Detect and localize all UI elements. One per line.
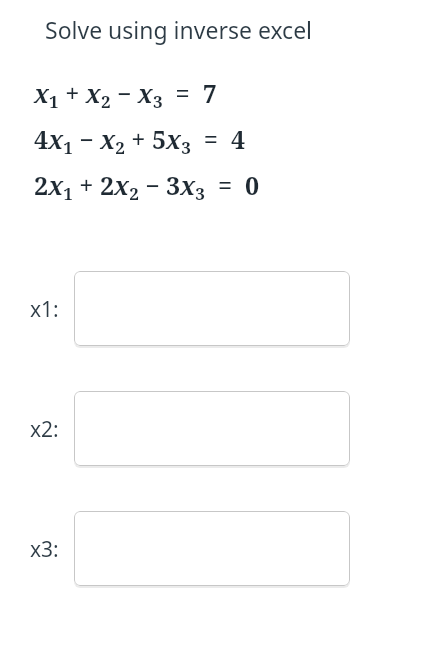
staticText: 4x1 − x2 + 5x3 = 4 [34,122,246,159]
staticText: x1 + x2 − x3 = 7 [34,76,217,113]
button[interactable]: Answer field for x3: [74,511,350,587]
staticText: x1: [30,295,59,324]
staticText: x3: [30,535,59,564]
staticText: 2x1 + 2x2 − 3x3 = 0 [34,168,260,205]
button[interactable]: Answer field for x1: [74,271,350,347]
staticText: Solve using inverse excel [45,14,313,45]
button[interactable]: Answer field for x2: [74,391,350,467]
staticText: x2: [30,415,59,444]
